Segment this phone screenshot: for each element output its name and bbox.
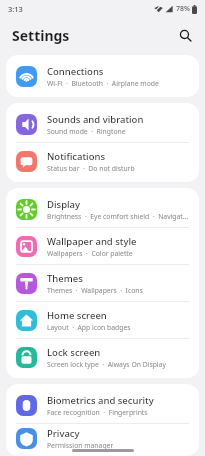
staticText: Screen lock type · Always On Display [47, 360, 166, 369]
staticText: Settings [12, 26, 70, 45]
staticText: Connections [47, 65, 104, 78]
staticText: Layout · App icon badges [47, 323, 131, 332]
staticText: Sounds and vibration [47, 113, 144, 126]
button[interactable]: Display [6, 191, 199, 227]
button[interactable]: Lock screen [6, 339, 199, 375]
staticText: 3:13 [8, 4, 23, 14]
staticText: Status bar · Do not disturb [47, 164, 135, 173]
button[interactable]: Themes [6, 265, 199, 301]
button[interactable]: Search [173, 23, 197, 47]
staticText: Brightness · Eye comfort shield · Naviga… [47, 212, 189, 221]
staticText: Home screen [47, 309, 107, 322]
button[interactable]: Sounds and vibration [6, 106, 199, 142]
staticText: Sound mode · Ringtone [47, 127, 126, 136]
staticText: Themes [47, 272, 83, 285]
staticText: Wi-Fi · Bluetooth · Airplane mode [47, 79, 159, 88]
button[interactable]: Notifications [6, 143, 199, 179]
staticText: Face recognition · Fingerprints [47, 408, 148, 417]
staticText: Display [47, 198, 81, 211]
staticText: Permission manager [47, 441, 114, 450]
staticText: Wallpaper and style [47, 235, 137, 248]
staticText: Themes · Wallpapers · Icons [47, 286, 143, 295]
staticText: Notifications [47, 150, 106, 163]
button[interactable]: Biometrics and security [6, 387, 199, 423]
staticText: Wallpapers · Color palette [47, 249, 133, 258]
button[interactable]: Home screen [6, 302, 199, 338]
button[interactable]: Connections [6, 58, 199, 94]
button[interactable]: Privacy [6, 424, 199, 453]
staticText: Biometrics and security [47, 394, 154, 407]
button[interactable]: Wallpaper and style [6, 228, 199, 264]
staticText: Lock screen [47, 346, 101, 359]
staticText: Privacy [47, 427, 80, 440]
staticText: 78% [176, 4, 190, 14]
